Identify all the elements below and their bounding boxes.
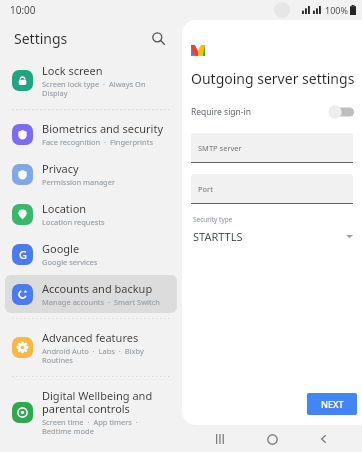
- staticText: Lock screen: [42, 63, 103, 78]
- staticText: Privacy: [42, 161, 79, 176]
- button[interactable]: Advanced features: [5, 324, 177, 371]
- button[interactable]: Port: [191, 174, 353, 203]
- staticText: Location requests: [42, 217, 105, 227]
- staticText: 10:00: [10, 3, 36, 17]
- staticText: Google: [42, 241, 80, 256]
- button[interactable]: Home: [259, 426, 285, 452]
- staticText: Require sign-in: [191, 106, 252, 118]
- staticText: Port: [198, 184, 213, 194]
- button[interactable]: Recents: [208, 426, 234, 452]
- staticText: 100%: [325, 4, 348, 16]
- staticText: Settings: [14, 29, 68, 48]
- button[interactable]: G: [5, 235, 177, 273]
- staticText: G: [19, 247, 27, 262]
- button[interactable]: Digital Wellbeing and parental controls: [5, 382, 177, 442]
- staticText: Google services: [42, 257, 98, 267]
- staticText: Accounts and backup: [42, 281, 153, 296]
- staticText: Digital Wellbeing and parental controls: [42, 388, 171, 416]
- button[interactable]: Lock screen: [5, 57, 177, 104]
- staticText: Biometrics and security: [42, 121, 163, 136]
- staticText: Android Auto · Labs · Bixby Routines: [42, 346, 171, 365]
- button[interactable]: Require sign-in: [191, 101, 362, 123]
- staticText: Outgoing server settings: [191, 69, 355, 88]
- staticText: Advanced features: [42, 330, 139, 345]
- button[interactable]: Location: [5, 195, 177, 233]
- staticText: Screen time · App timers · Bedtime mode: [42, 417, 171, 436]
- staticText: Location: [42, 201, 87, 216]
- staticText: NEXT: [321, 398, 344, 410]
- staticText: Manage accounts · Smart Switch: [42, 297, 160, 307]
- button[interactable]: SMTP server: [191, 133, 353, 162]
- button[interactable]: Accounts and backup: [5, 275, 177, 313]
- button[interactable]: STARTTLS: [191, 229, 353, 244]
- staticText: Face recognition · Fingerprints: [42, 137, 153, 147]
- button[interactable]: Back: [311, 426, 337, 452]
- staticText: Permission manager: [42, 177, 116, 187]
- staticText: STARTTLS: [193, 229, 243, 244]
- button[interactable]: Search: [146, 26, 170, 50]
- staticText: Security type: [193, 215, 233, 224]
- staticText: Screen lock type · Always On Display: [42, 79, 171, 98]
- staticText: SMTP server: [198, 143, 242, 153]
- button[interactable]: NEXT: [307, 393, 357, 415]
- button[interactable]: Biometrics and security: [5, 115, 177, 153]
- button[interactable]: Privacy: [5, 155, 177, 193]
